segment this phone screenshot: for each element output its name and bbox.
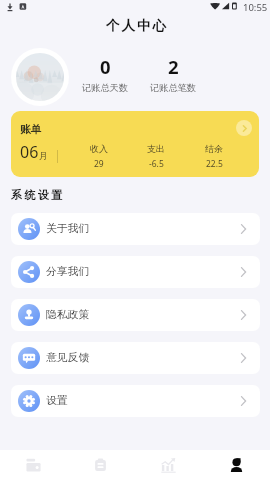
staticText: 06 [20, 141, 39, 163]
staticText: 隐私政策 [46, 308, 90, 322]
button[interactable]: Avatar [11, 48, 69, 106]
staticText: 22.5 [206, 158, 223, 170]
staticText: 记账总天数 [82, 82, 128, 94]
staticText: 结余 [205, 143, 223, 154]
staticText: 分享我们 [46, 265, 90, 279]
staticText: 0 [100, 54, 111, 79]
button[interactable]: 0 [65, 54, 145, 94]
staticText: 10:55 [243, 1, 268, 14]
staticText: 记账总笔数 [150, 82, 196, 94]
staticText: 账单 [20, 123, 41, 136]
staticText: 支出 [147, 143, 165, 154]
button[interactable]: Wallet [0, 450, 67, 480]
staticText: 29 [94, 158, 104, 170]
button[interactable]: 账单 [11, 111, 259, 177]
button[interactable]: Statistics [134, 450, 202, 480]
staticText: 意见反馈 [46, 351, 90, 365]
staticText: -6.5 [149, 158, 164, 170]
button[interactable]: 设置 [11, 385, 260, 417]
staticText: 关于我们 [46, 222, 90, 236]
staticText: 设置 [46, 394, 68, 408]
button[interactable]: 分享我们 [11, 256, 260, 288]
staticText: 个人中心 [105, 17, 167, 34]
staticText: 收入 [90, 143, 108, 154]
button[interactable]: 关于我们 [11, 213, 260, 245]
button[interactable]: View bill details [236, 120, 252, 136]
button[interactable]: 隐私政策 [11, 299, 260, 331]
staticText: 2 [168, 54, 179, 79]
staticText: 月 [39, 151, 48, 162]
staticText: 系统设置 [11, 188, 65, 202]
button[interactable]: 意见反馈 [11, 342, 260, 374]
button[interactable]: Profile [202, 450, 270, 480]
button[interactable]: 2 [133, 54, 213, 94]
button[interactable]: Records [67, 450, 134, 480]
